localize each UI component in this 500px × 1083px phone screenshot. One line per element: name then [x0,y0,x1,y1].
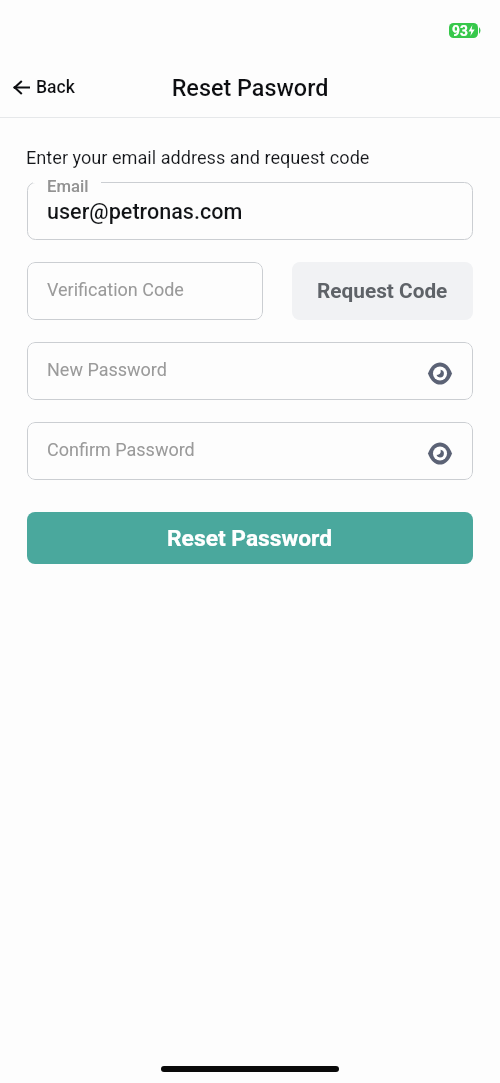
button[interactable]: Back [10,73,79,102]
button[interactable]: Confirm Password [27,422,473,480]
staticText: 93 [452,23,468,38]
staticText: Confirm Password [47,439,195,460]
button[interactable]: Email [27,182,473,240]
staticText: Back [36,77,75,98]
staticText: Verification Code [47,279,184,300]
staticText: user@petronas.com [47,199,243,224]
staticText: Reset Password [167,525,333,552]
button[interactable]: Toggle password visibility [425,438,455,468]
staticText: New Password [47,359,167,380]
button[interactable]: New Password [27,342,473,400]
button[interactable]: Verification Code [27,262,263,320]
staticText: Email [47,177,89,197]
button[interactable]: Reset Password [27,512,473,564]
staticText: Enter your email address and request cod… [26,147,370,168]
staticText: Request Code [317,279,448,303]
staticText: Reset Pasword [0,74,500,101]
button[interactable]: Toggle password visibility [425,358,455,388]
button[interactable]: Request Code [292,262,473,320]
